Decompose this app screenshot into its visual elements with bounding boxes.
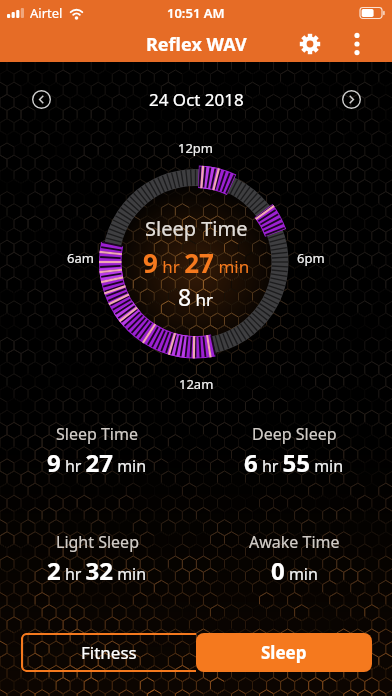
staticText: Reflex WAV: [146, 32, 247, 57]
button[interactable]: [340, 88, 362, 110]
staticText: 2 hr 32 min: [47, 554, 147, 587]
staticText: Fitness: [81, 641, 137, 664]
staticText: 6pm: [297, 249, 325, 267]
staticText: 10:51 AM: [167, 4, 225, 22]
button[interactable]: [292, 26, 328, 62]
staticText: 6 hr 55 min: [244, 446, 344, 479]
button[interactable]: Sleep: [196, 633, 372, 672]
staticText: Sleep: [261, 641, 307, 664]
staticText: 0 min: [271, 554, 318, 587]
staticText: 12pm: [178, 139, 214, 157]
staticText: 9 hr 27 min: [143, 245, 250, 280]
staticText: Airtel: [30, 4, 63, 22]
staticText: 6am: [67, 249, 94, 267]
button[interactable]: 24 Oct 2018: [149, 88, 244, 111]
staticText: Sleep Time: [56, 423, 138, 445]
staticText: Deep Sleep: [252, 423, 337, 445]
button[interactable]: Fitness: [21, 633, 196, 672]
button[interactable]: [30, 88, 52, 110]
staticText: Sleep Time: [145, 215, 248, 242]
staticText: 8 hr: [178, 281, 214, 312]
staticText: Awake Time: [249, 531, 340, 553]
staticText: 9 hr 27 min: [47, 446, 147, 479]
button[interactable]: [344, 31, 370, 57]
staticText: 12am: [179, 375, 214, 393]
staticText: Light Sleep: [56, 531, 139, 553]
